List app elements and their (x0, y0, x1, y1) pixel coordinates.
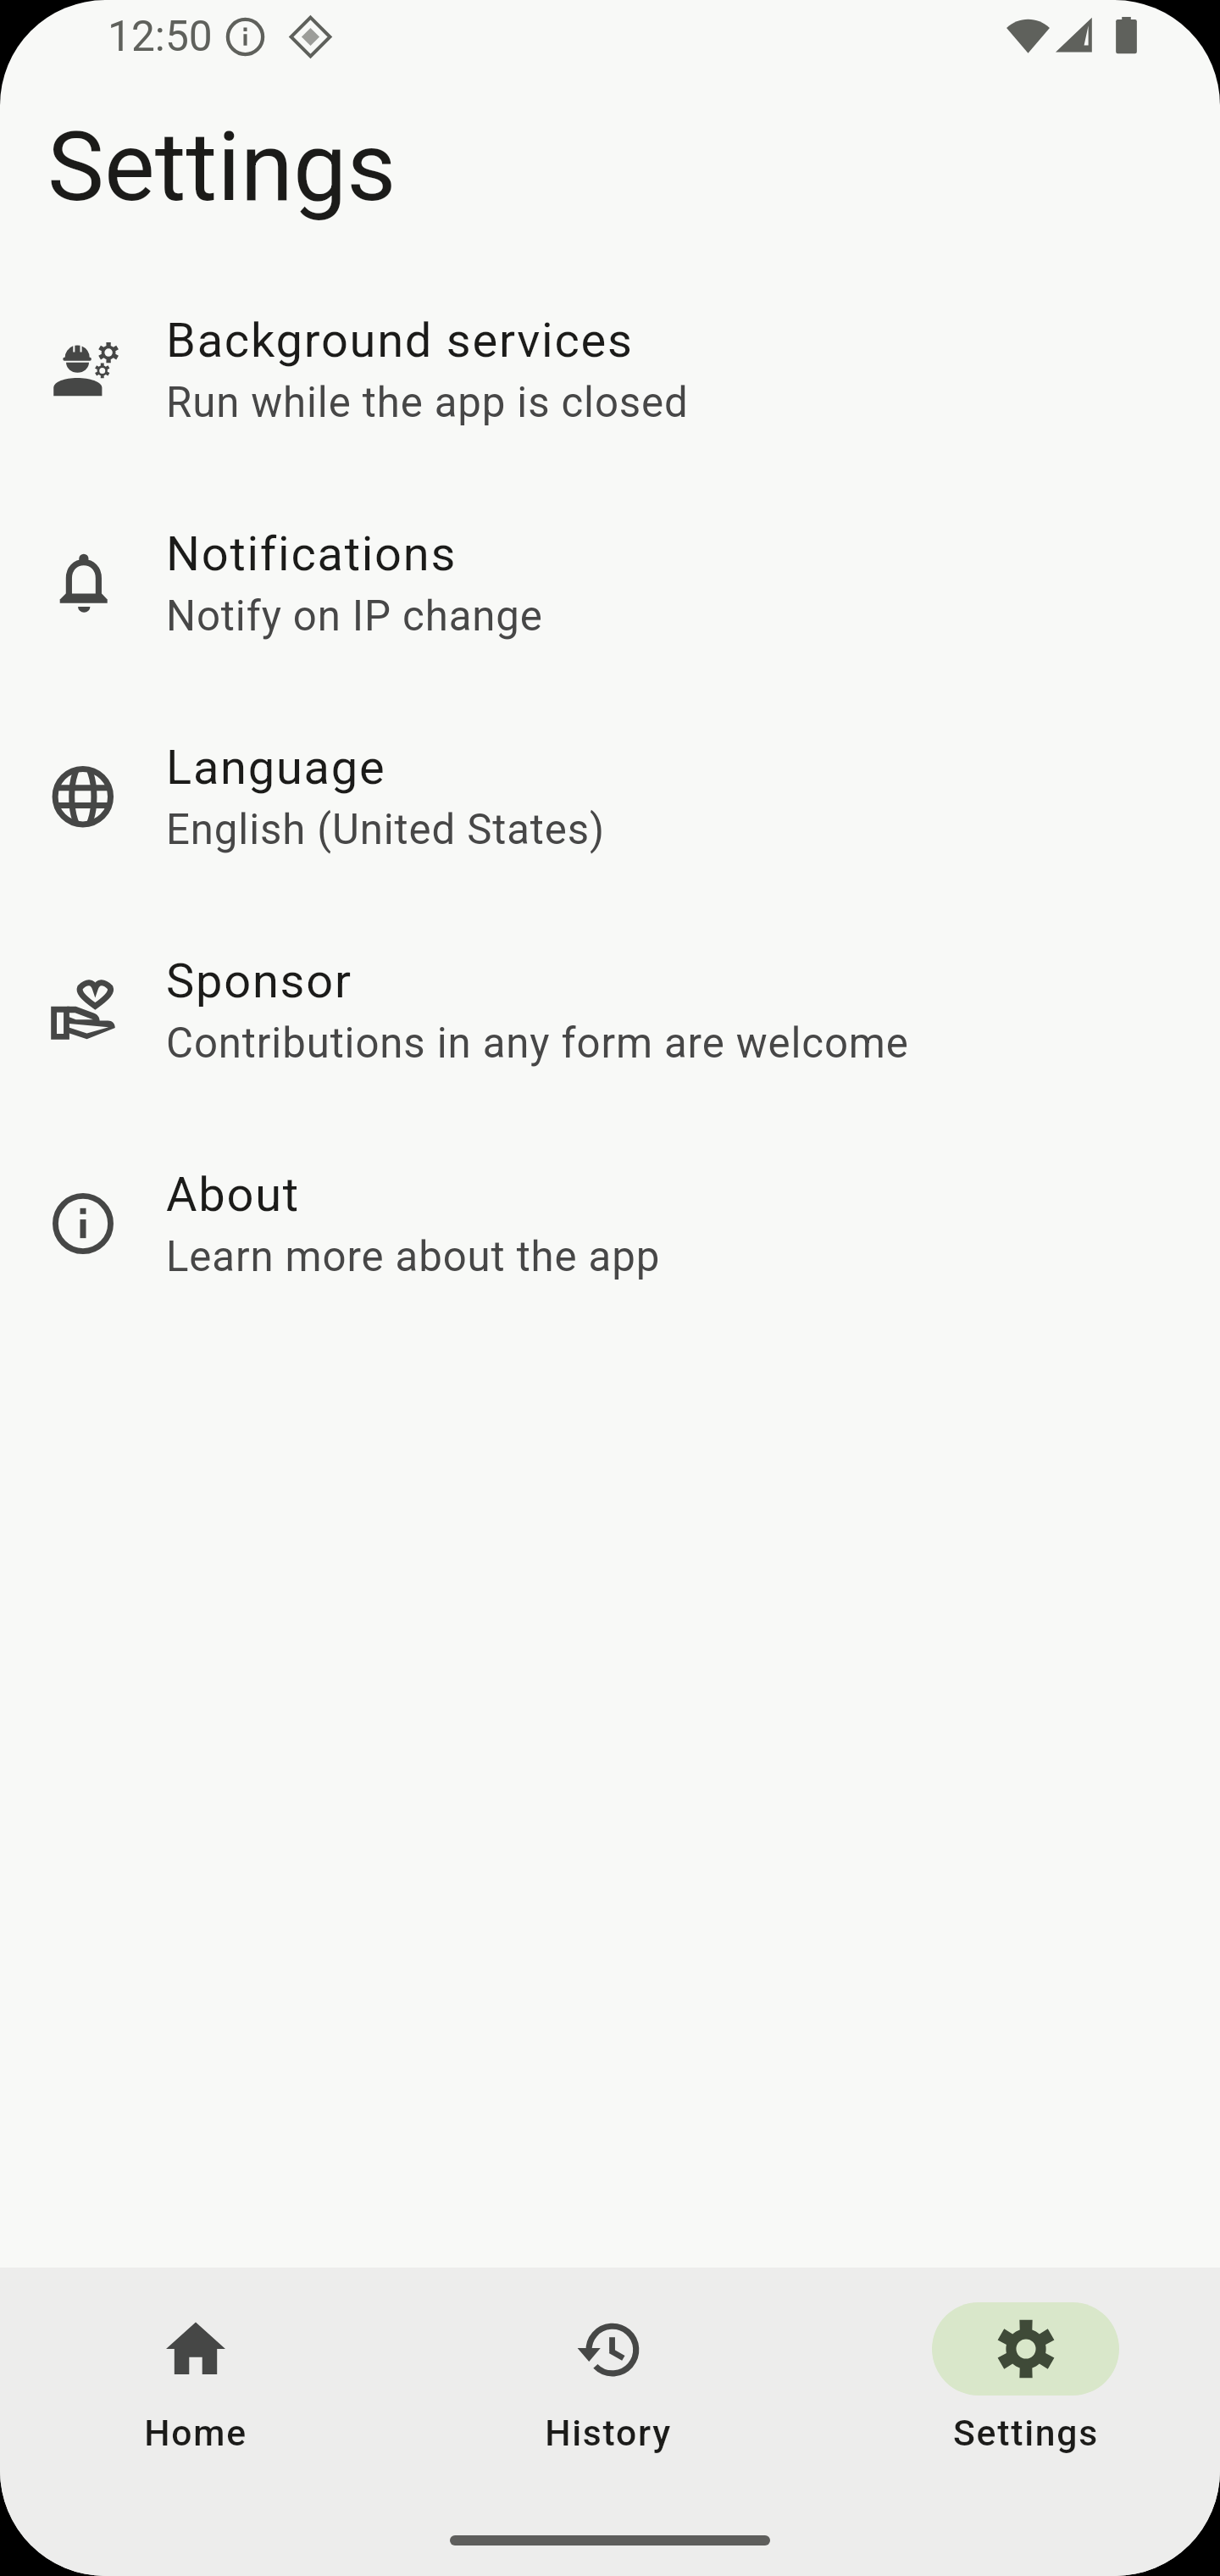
other: Notifications (0, 547, 166, 619)
staticText: Notify on IP change (166, 591, 543, 641)
staticText: Settings (47, 111, 396, 223)
staticText: Language (166, 740, 386, 796)
other: Background services (0, 334, 166, 405)
staticText: Settings (953, 2412, 1099, 2454)
button[interactable]: Sponsor (0, 903, 1220, 1117)
staticText: About (166, 1167, 300, 1223)
staticText: Background services (166, 313, 634, 369)
button[interactable]: Background services (0, 263, 1220, 476)
button[interactable]: History (401, 2268, 815, 2505)
staticText: Run while the app is closed (166, 378, 689, 427)
button[interactable]: Notifications (0, 476, 1220, 690)
other: Sponsor (0, 974, 166, 1046)
staticText: History (545, 2412, 672, 2454)
button[interactable]: Language (0, 690, 1220, 903)
other: Language (0, 761, 166, 832)
staticText: Learn more about the app (166, 1232, 661, 1281)
staticText: Contributions in any form are welcome (166, 1019, 909, 1068)
staticText: Home (144, 2412, 247, 2454)
button[interactable]: Settings (818, 2268, 1220, 2505)
button[interactable]: About (0, 1117, 1220, 1330)
button[interactable]: Home (0, 2268, 402, 2505)
staticText: Notifications (166, 526, 457, 582)
other: About (0, 1188, 166, 1259)
staticText: 12:50 (108, 12, 213, 61)
staticText: Sponsor (166, 953, 352, 1009)
staticText: English (United States) (166, 805, 606, 854)
